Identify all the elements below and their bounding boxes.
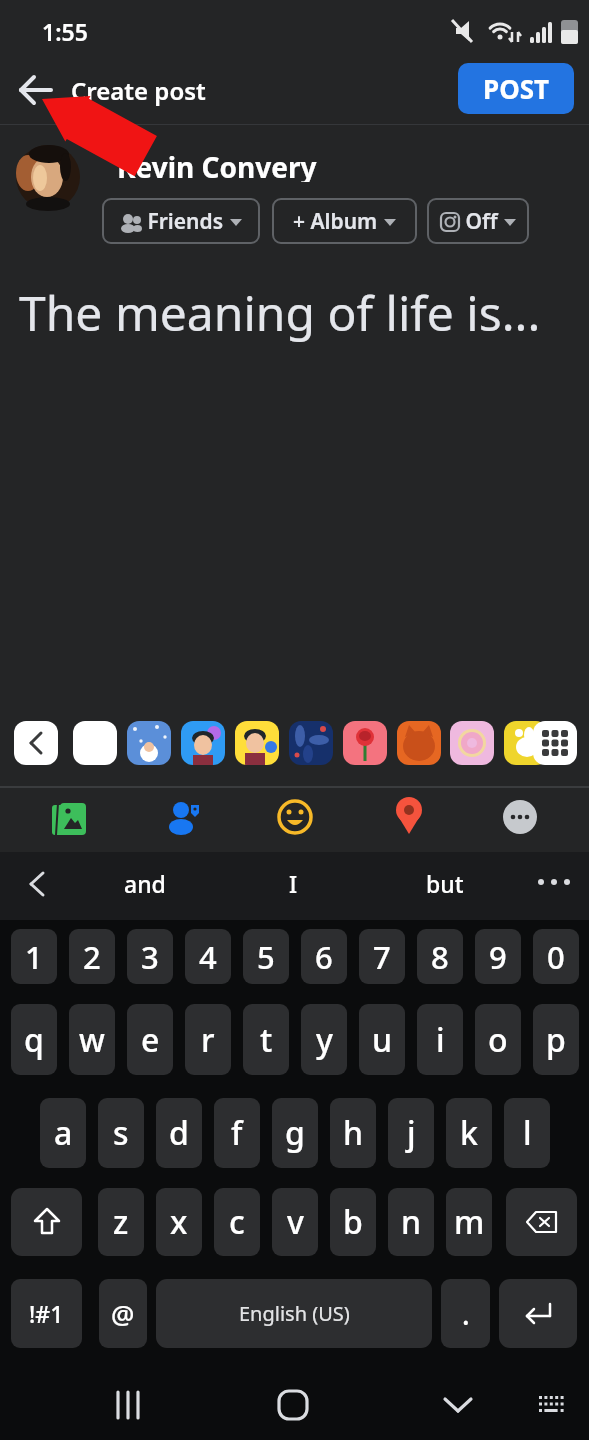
button[interactable]: s — [98, 1098, 144, 1168]
staticText: Kevin Convery — [117, 148, 317, 182]
staticText: e — [141, 1018, 160, 1062]
button[interactable]: !#1 — [11, 1279, 82, 1348]
staticText: f — [231, 1111, 243, 1155]
button[interactable] — [73, 721, 117, 765]
button[interactable]: . — [441, 1279, 490, 1348]
button[interactable]: y — [301, 1004, 347, 1075]
button[interactable] — [181, 721, 225, 765]
staticText: g — [285, 1111, 305, 1155]
button[interactable] — [45, 795, 89, 839]
staticText: i — [436, 1018, 445, 1062]
staticText: The meaning of life is... — [19, 280, 541, 344]
staticText: !#1 — [29, 1298, 64, 1329]
button[interactable] — [397, 721, 441, 765]
button[interactable] — [235, 721, 279, 765]
button[interactable]: w — [69, 1004, 115, 1075]
button[interactable] — [436, 1383, 480, 1427]
staticText: x — [170, 1200, 188, 1244]
button[interactable] — [533, 721, 577, 765]
button[interactable]: v — [272, 1188, 318, 1256]
button[interactable]: t — [243, 1004, 289, 1075]
button[interactable] — [343, 721, 387, 765]
button[interactable] — [161, 795, 205, 839]
button[interactable]: Friends — [102, 198, 260, 244]
button[interactable]: o — [475, 1004, 521, 1075]
button[interactable]: f — [214, 1098, 260, 1168]
button[interactable]: a — [40, 1098, 86, 1168]
button[interactable] — [504, 721, 548, 765]
button[interactable]: but — [400, 858, 490, 908]
staticText: m — [454, 1200, 485, 1244]
button[interactable]: j — [388, 1098, 434, 1168]
button[interactable]: 4 — [185, 929, 231, 984]
button[interactable]: + Album — [272, 198, 417, 244]
button[interactable] — [289, 721, 333, 765]
button[interactable] — [506, 1188, 577, 1256]
staticText: but — [426, 868, 464, 899]
button[interactable]: n — [388, 1188, 434, 1256]
button[interactable]: i — [417, 1004, 463, 1075]
button[interactable]: 8 — [417, 929, 463, 984]
button[interactable] — [271, 1383, 315, 1427]
button[interactable] — [15, 862, 59, 906]
button[interactable]: g — [272, 1098, 318, 1168]
button[interactable]: 9 — [475, 929, 521, 984]
button[interactable]: u — [359, 1004, 405, 1075]
button[interactable]: I — [270, 858, 316, 908]
staticText: y — [316, 1018, 333, 1062]
staticText: o — [488, 1018, 508, 1062]
staticText: 5 — [257, 936, 275, 978]
button[interactable] — [127, 721, 171, 765]
button[interactable]: z — [98, 1188, 144, 1256]
button[interactable] — [11, 1188, 82, 1256]
button[interactable]: 6 — [301, 929, 347, 984]
button[interactable]: English (US) — [156, 1279, 432, 1348]
staticText: r — [201, 1018, 215, 1062]
button[interactable]: @ — [99, 1279, 147, 1348]
button[interactable]: e — [127, 1004, 173, 1075]
button[interactable] — [499, 1279, 577, 1348]
staticText: 6 — [315, 936, 333, 978]
button[interactable]: p — [533, 1004, 579, 1075]
staticText: 9 — [489, 936, 507, 978]
staticText: 1 — [25, 936, 43, 978]
button[interactable]: k — [446, 1098, 492, 1168]
button[interactable]: 7 — [359, 929, 405, 984]
button[interactable] — [14, 721, 58, 765]
button[interactable] — [498, 795, 542, 839]
button[interactable]: 2 — [69, 929, 115, 984]
staticText: w — [79, 1018, 105, 1062]
button[interactable]: m — [446, 1188, 492, 1256]
button[interactable]: and — [100, 858, 190, 908]
button[interactable] — [387, 793, 431, 841]
staticText: Create post — [71, 74, 206, 107]
button[interactable]: 5 — [243, 929, 289, 984]
button[interactable] — [14, 70, 58, 110]
button[interactable]: 3 — [127, 929, 173, 984]
button[interactable]: x — [156, 1188, 202, 1256]
staticText: 2 — [83, 936, 101, 978]
button[interactable]: Off — [427, 198, 529, 244]
staticText: a — [54, 1111, 73, 1155]
button[interactable]: d — [156, 1098, 202, 1168]
button[interactable]: r — [185, 1004, 231, 1075]
button[interactable] — [450, 721, 494, 765]
button[interactable]: l — [504, 1098, 550, 1168]
button[interactable]: h — [330, 1098, 376, 1168]
button[interactable]: q — [11, 1004, 57, 1075]
button[interactable]: c — [214, 1188, 260, 1256]
staticText: @ — [111, 1296, 135, 1331]
staticText: z — [113, 1200, 129, 1244]
staticText: v — [287, 1200, 304, 1244]
button[interactable]: b — [330, 1188, 376, 1256]
staticText: 4 — [199, 936, 217, 978]
button[interactable] — [106, 1383, 150, 1427]
button[interactable]: 0 — [533, 929, 579, 984]
button[interactable]: POST — [458, 63, 574, 114]
staticText: 1:55 — [42, 16, 88, 47]
button[interactable] — [273, 795, 317, 839]
staticText: l — [523, 1111, 532, 1155]
button[interactable]: 1 — [11, 929, 57, 984]
staticText: d — [169, 1111, 189, 1155]
button[interactable] — [529, 1383, 573, 1427]
